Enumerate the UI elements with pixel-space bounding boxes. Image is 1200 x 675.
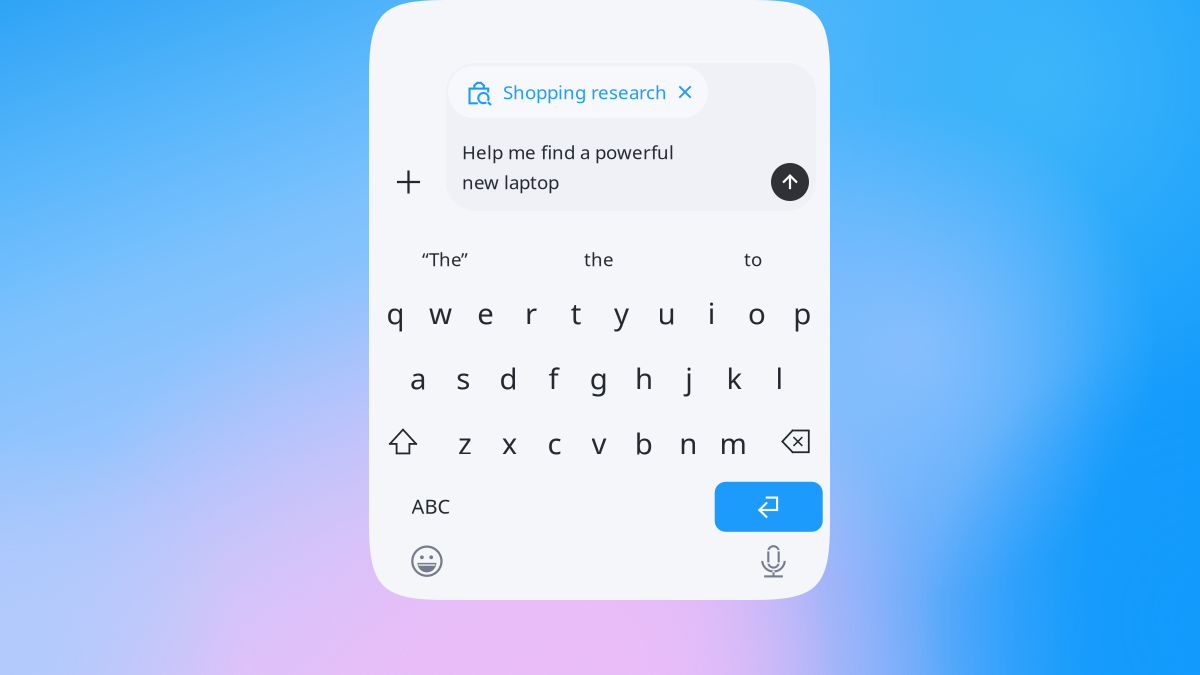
button[interactable]: c [532, 417, 576, 469]
staticText: q [386, 293, 404, 332]
staticText: h [635, 358, 653, 397]
button[interactable]: n [666, 417, 710, 469]
staticText: Shopping research [503, 80, 667, 104]
staticText: e [477, 293, 494, 332]
button[interactable]: “The” [375, 237, 515, 281]
button[interactable]: i [690, 287, 734, 339]
button[interactable]: Send [768, 160, 812, 204]
button[interactable]: g [577, 352, 621, 404]
staticText: s [456, 358, 470, 397]
staticText: j [685, 358, 693, 397]
button[interactable]: y [599, 287, 643, 339]
staticText: m [719, 423, 746, 462]
staticText: t [571, 293, 582, 332]
staticText: Help me find a powerful [462, 140, 674, 164]
staticText: i [708, 293, 716, 332]
button[interactable]: t [554, 287, 598, 339]
staticText: x [502, 423, 518, 462]
staticText: o [748, 293, 766, 332]
staticText: g [590, 358, 608, 397]
staticText: z [458, 423, 472, 462]
staticText: k [726, 358, 742, 397]
button[interactable]: d [486, 352, 530, 404]
staticText: “The” [422, 247, 468, 271]
staticText: the [584, 247, 614, 271]
button[interactable]: j [667, 352, 711, 404]
button[interactable]: r [509, 287, 553, 339]
button[interactable]: w [419, 287, 463, 339]
button[interactable]: Dictate [751, 541, 795, 585]
button[interactable]: Shopping research [448, 66, 708, 118]
staticText: new laptop [462, 169, 559, 194]
button[interactable]: p [780, 287, 824, 339]
button[interactable]: e [464, 287, 508, 339]
staticText: a [410, 358, 426, 397]
staticText: b [635, 423, 653, 462]
button[interactable]: o [735, 287, 779, 339]
staticText: to [744, 247, 762, 271]
staticText: d [499, 358, 517, 397]
button[interactable]: z [443, 417, 487, 469]
button[interactable]: x [488, 417, 532, 469]
button[interactable]: m [711, 417, 755, 469]
staticText: ABC [411, 493, 450, 519]
button[interactable]: l [758, 352, 802, 404]
button[interactable]: to [683, 237, 823, 281]
staticText: v [591, 423, 606, 462]
button[interactable]: Return [715, 482, 823, 532]
button[interactable]: k [712, 352, 756, 404]
staticText: r [525, 293, 537, 332]
button[interactable]: f [532, 352, 576, 404]
staticText: n [679, 423, 697, 462]
staticText: u [658, 293, 676, 332]
button[interactable]: h [622, 352, 666, 404]
staticText: y [614, 293, 629, 332]
button[interactable]: Delete [773, 419, 819, 465]
button[interactable]: the [529, 237, 669, 281]
staticText: c [547, 423, 561, 462]
button[interactable]: Add attachment [386, 160, 430, 204]
button[interactable]: v [577, 417, 621, 469]
button[interactable]: s [441, 352, 485, 404]
button[interactable]: b [622, 417, 666, 469]
button[interactable]: q [373, 287, 417, 339]
button[interactable]: ABC [394, 482, 468, 530]
button[interactable]: Shift [380, 420, 426, 466]
staticText: f [549, 358, 559, 397]
button[interactable]: Emoji [405, 539, 449, 583]
staticText: w [429, 293, 452, 332]
staticText: p [793, 293, 811, 332]
button[interactable]: a [396, 352, 440, 404]
button[interactable]: u [645, 287, 689, 339]
staticText: l [776, 358, 784, 397]
